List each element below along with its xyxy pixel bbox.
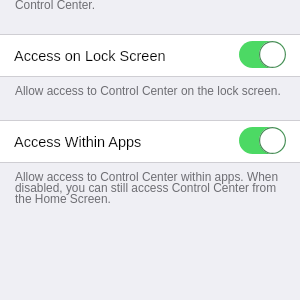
button[interactable]: Toggle setting bbox=[239, 127, 286, 154]
staticText: Allow access to Control Center on the lo… bbox=[15, 84, 281, 97]
staticText: Allow access to Control Center within ap… bbox=[15, 170, 279, 206]
staticText: Control Center. bbox=[15, 0, 95, 11]
staticText: Access on Lock Screen bbox=[14, 48, 166, 64]
staticText: Access Within Apps bbox=[14, 134, 142, 150]
button[interactable]: Access on Lock Screen bbox=[0, 35, 300, 76]
button[interactable]: Toggle setting bbox=[239, 41, 286, 68]
button[interactable]: Access Within Apps bbox=[0, 121, 300, 162]
